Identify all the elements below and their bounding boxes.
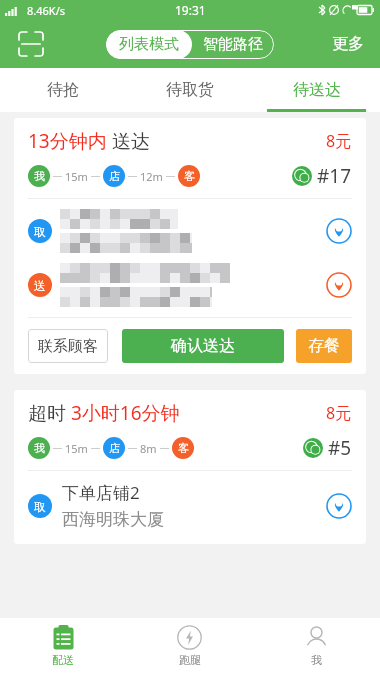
staticText: 15m — [65, 441, 88, 456]
staticText: 19:31 — [175, 2, 206, 18]
button[interactable]: 列表模式 — [106, 30, 192, 59]
staticText: 更多 — [332, 34, 364, 54]
staticText: 待取货 — [166, 80, 214, 100]
staticText: 跑腿 — [179, 653, 201, 667]
button[interactable]: 13分钟内 — [14, 118, 366, 374]
staticText: 联系顾客 — [38, 337, 98, 356]
button[interactable]: 存餐 — [296, 329, 352, 363]
button[interactable]: 待抢 — [0, 68, 126, 112]
staticText: 列表模式 — [119, 35, 179, 54]
staticText: 3小时16分钟 — [71, 400, 180, 426]
staticText: #5 — [328, 435, 352, 461]
staticText: 超时 — [28, 402, 66, 426]
button[interactable]: Open map — [326, 493, 352, 519]
button[interactable]: 超时 — [14, 390, 366, 544]
staticText: 8元 — [326, 402, 352, 424]
staticText: 客 — [184, 169, 195, 183]
staticText: 配送 — [52, 653, 74, 667]
button[interactable]: #17 — [292, 163, 352, 189]
button[interactable]: Open map — [326, 272, 352, 298]
button[interactable]: 待取货 — [126, 68, 253, 112]
staticText: 待送达 — [293, 80, 341, 100]
button[interactable]: 我 — [253, 618, 380, 673]
staticText: #17 — [317, 163, 352, 189]
button[interactable]: 配送 — [0, 618, 126, 673]
staticText: 我 — [311, 653, 322, 667]
button[interactable]: 跑腿 — [126, 618, 253, 673]
button[interactable]: 确认送达 — [122, 329, 284, 363]
staticText: 送 — [34, 278, 46, 293]
button[interactable]: 更多 — [316, 20, 380, 68]
staticText: 存餐 — [308, 336, 340, 356]
staticText: 8m — [140, 441, 157, 456]
staticText: 12m — [140, 169, 163, 184]
staticText: 送达 — [112, 130, 150, 154]
staticText: 下单店铺2 — [62, 481, 140, 504]
staticText: 确认送达 — [171, 336, 235, 356]
staticText: 待抢 — [47, 80, 79, 100]
staticText: 店 — [109, 169, 120, 183]
button[interactable]: #5 — [303, 435, 352, 461]
staticText: 我 — [34, 441, 45, 455]
staticText: 8元 — [326, 130, 352, 152]
button[interactable]: Open map — [326, 218, 352, 244]
staticText: 13分钟内 — [28, 128, 107, 154]
button[interactable]: 智能路径 — [192, 30, 274, 59]
staticText: 15m — [65, 169, 88, 184]
staticText: 智能路径 — [203, 35, 263, 54]
button[interactable]: Scan — [14, 27, 48, 61]
staticText: 客 — [178, 441, 189, 455]
staticText: 西海明珠大厦 — [62, 509, 164, 530]
staticText: 取 — [34, 224, 46, 239]
staticText: 店 — [109, 441, 120, 455]
staticText: 8.46K/s — [27, 3, 65, 18]
button[interactable]: 待送达 — [253, 68, 380, 112]
button[interactable]: 联系顾客 — [28, 329, 108, 363]
staticText: 我 — [34, 169, 45, 183]
staticText: 取 — [34, 499, 46, 514]
